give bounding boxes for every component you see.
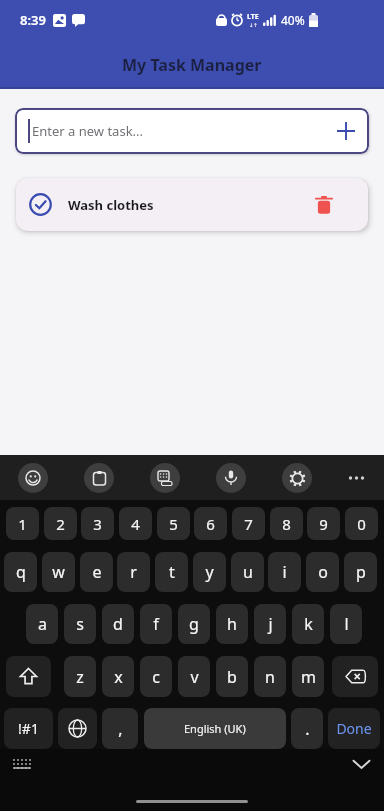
button[interactable] <box>352 756 371 773</box>
staticText: x <box>114 666 123 688</box>
button[interactable]: d <box>102 604 134 644</box>
button[interactable]: f <box>140 604 172 644</box>
button[interactable] <box>216 463 246 493</box>
button[interactable]: 1 <box>6 507 39 540</box>
button[interactable]: v <box>178 656 210 697</box>
button[interactable]: 7 <box>232 507 265 540</box>
staticText: y <box>205 561 214 583</box>
staticText: Done <box>336 719 372 738</box>
staticText: 7 <box>244 514 253 534</box>
staticText: 5 <box>169 514 178 534</box>
button[interactable]: j <box>254 604 286 644</box>
staticText: 9 <box>319 514 328 534</box>
button[interactable]: q <box>4 552 37 592</box>
staticText: i <box>282 561 287 583</box>
button[interactable] <box>348 463 366 493</box>
staticText: 40% <box>281 12 305 28</box>
staticText: 1 <box>18 514 27 534</box>
staticText: z <box>76 666 84 688</box>
staticText: English (UK) <box>184 721 246 736</box>
button[interactable]: x <box>102 656 134 697</box>
button[interactable] <box>332 656 378 697</box>
button[interactable]: 5 <box>157 507 190 540</box>
button[interactable]: y <box>193 552 226 592</box>
staticText: 8:39 <box>20 11 46 29</box>
button[interactable]: s <box>64 604 96 644</box>
staticText: n <box>265 666 275 688</box>
staticText: e <box>92 561 102 583</box>
button[interactable]: z <box>64 656 96 697</box>
button[interactable] <box>12 757 32 771</box>
staticText: u <box>243 561 253 583</box>
staticText: k <box>304 613 313 635</box>
button[interactable]: r <box>117 552 150 592</box>
staticText: b <box>227 666 237 688</box>
button[interactable]: g <box>178 604 210 644</box>
button[interactable]: t <box>155 552 188 592</box>
button[interactable]: c <box>140 656 172 697</box>
button[interactable] <box>337 122 355 140</box>
button[interactable]: 4 <box>119 507 152 540</box>
button[interactable]: p <box>344 552 377 592</box>
button[interactable]: !#1 <box>4 708 53 749</box>
button[interactable] <box>282 463 312 493</box>
button[interactable]: b <box>216 656 248 697</box>
staticText: Wash clothes <box>68 196 154 214</box>
staticText: ↓↑ <box>249 22 258 28</box>
button[interactable]: 8 <box>270 507 303 540</box>
staticText: 6 <box>206 514 215 534</box>
button[interactable] <box>150 463 180 493</box>
staticText: LTE <box>247 12 259 22</box>
button[interactable] <box>58 708 97 749</box>
button[interactable]: m <box>292 656 324 697</box>
button[interactable]: Wash clothes <box>16 178 368 231</box>
button[interactable]: i <box>268 552 301 592</box>
staticText: 3 <box>93 514 102 534</box>
staticText: , <box>118 718 123 740</box>
staticText: f <box>153 613 159 635</box>
staticText: t <box>169 561 175 583</box>
staticText: p <box>356 561 366 583</box>
button[interactable]: o <box>306 552 339 592</box>
staticText: 0 <box>357 514 366 534</box>
staticText: m <box>301 666 316 688</box>
button[interactable]: Enter a new task... <box>15 108 369 154</box>
staticText: . <box>305 718 310 740</box>
button[interactable]: w <box>42 552 75 592</box>
staticText: w <box>52 561 65 583</box>
button[interactable]: 9 <box>307 507 340 540</box>
button[interactable] <box>6 656 51 697</box>
button[interactable]: 3 <box>81 507 114 540</box>
staticText: r <box>130 561 137 583</box>
staticText: j <box>268 613 273 635</box>
button[interactable]: 6 <box>194 507 227 540</box>
button[interactable]: 0 <box>345 507 378 540</box>
staticText: 8 <box>282 514 291 534</box>
button[interactable]: n <box>254 656 286 697</box>
button[interactable]: k <box>292 604 324 644</box>
staticText: g <box>189 613 199 635</box>
staticText: Enter a new task... <box>32 122 144 140</box>
button[interactable]: a <box>26 604 58 644</box>
button[interactable]: . <box>291 708 323 749</box>
button[interactable]: , <box>102 708 138 749</box>
staticText: v <box>190 666 199 688</box>
staticText: h <box>227 613 237 635</box>
button[interactable]: h <box>216 604 248 644</box>
staticText: s <box>76 613 84 635</box>
staticText: My Task Manager <box>122 54 262 76</box>
button[interactable]: l <box>330 604 362 644</box>
staticText: 4 <box>131 514 140 534</box>
button[interactable] <box>84 463 114 493</box>
button[interactable] <box>29 193 52 216</box>
staticText: a <box>38 613 47 635</box>
button[interactable]: English (UK) <box>144 708 286 749</box>
staticText: d <box>113 613 123 635</box>
button[interactable]: 2 <box>44 507 77 540</box>
button[interactable]: Done <box>328 708 380 749</box>
button[interactable]: u <box>231 552 264 592</box>
button[interactable] <box>315 196 333 214</box>
staticText: c <box>152 666 160 688</box>
button[interactable]: e <box>80 552 113 592</box>
button[interactable] <box>18 463 48 493</box>
